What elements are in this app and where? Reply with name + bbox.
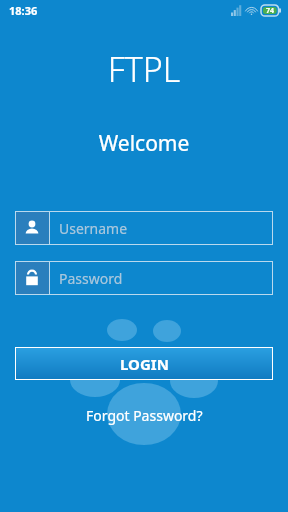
staticText: Username — [59, 219, 128, 238]
staticText: LOGIN — [120, 354, 169, 374]
button[interactable]: Password — [15, 261, 273, 295]
staticText: FTPL — [0, 46, 288, 92]
button[interactable]: Username — [15, 211, 273, 245]
staticText: Password — [59, 269, 123, 288]
button[interactable]: Forgot Password? — [0, 406, 288, 425]
button[interactable]: LOGIN — [15, 347, 273, 380]
staticText: 18:36 — [9, 3, 38, 18]
staticText: Welcome — [0, 129, 288, 158]
other: Password — [15, 261, 49, 295]
staticText: 74 — [266, 6, 275, 16]
staticText: Forgot Password? — [86, 406, 203, 425]
other: Username — [15, 211, 49, 245]
